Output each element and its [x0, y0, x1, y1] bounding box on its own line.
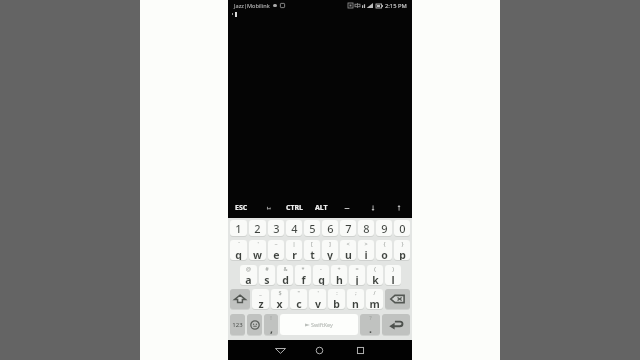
button[interactable]: /	[366, 289, 383, 309]
button[interactable]: 4	[286, 220, 302, 236]
button[interactable]: 6	[322, 220, 338, 236]
staticText: 6	[327, 221, 334, 236]
staticText: ;	[355, 289, 357, 296]
staticText: 2:15 PM	[385, 2, 407, 10]
button[interactable]: }	[394, 240, 410, 260]
button[interactable]: 3	[268, 220, 284, 236]
staticText: p	[399, 248, 406, 260]
button[interactable]: 2	[249, 220, 266, 236]
staticText: n	[352, 297, 359, 309]
button[interactable]: [	[304, 240, 320, 260]
staticText: 0	[399, 221, 406, 236]
button[interactable]: |	[286, 240, 302, 260]
staticText: 9	[381, 221, 388, 236]
button[interactable]: ALT	[308, 198, 334, 218]
button[interactable]: 5	[304, 220, 320, 236]
button[interactable]: $	[271, 289, 288, 309]
staticText: ESC	[235, 203, 248, 213]
staticText: .	[369, 322, 372, 335]
staticText: t	[310, 248, 315, 260]
staticText: k	[372, 273, 379, 285]
staticText: `	[238, 240, 240, 247]
button[interactable]: >	[358, 240, 374, 260]
button[interactable]: Recent apps	[349, 340, 371, 360]
button[interactable]: ]	[322, 240, 338, 260]
staticText: ]	[329, 240, 331, 247]
staticText: a	[245, 273, 252, 285]
button[interactable]: Home	[308, 340, 330, 360]
button[interactable]: Arrow up	[386, 198, 412, 218]
button[interactable]: Enter	[382, 314, 410, 335]
button[interactable]: Shift	[230, 289, 250, 309]
staticText: l	[391, 273, 395, 285]
staticText: (	[374, 265, 376, 272]
button[interactable]: '	[249, 240, 266, 260]
button[interactable]: _	[252, 289, 269, 309]
staticText: f	[301, 273, 306, 285]
staticText: Jazz|Mobilink	[234, 2, 270, 10]
button[interactable]: #	[259, 265, 275, 285]
staticText: |	[292, 240, 296, 247]
staticText: z	[258, 297, 264, 309]
button[interactable]: Backspace	[385, 289, 410, 309]
button[interactable]: "	[290, 289, 307, 309]
button[interactable]: )	[385, 265, 401, 285]
staticText: '	[257, 240, 259, 247]
button[interactable]: SwiftKey	[280, 314, 358, 335]
staticText: u	[345, 248, 352, 260]
button[interactable]: ;	[347, 289, 364, 309]
button[interactable]: ESC	[228, 198, 255, 218]
staticText: {	[383, 240, 386, 247]
button[interactable]: 7	[340, 220, 356, 236]
staticText: c	[296, 297, 302, 309]
button[interactable]: `	[230, 240, 247, 260]
button[interactable]: Arrow down	[360, 198, 386, 218]
staticText: -	[320, 265, 322, 272]
staticText: !	[270, 314, 272, 321]
staticText: s	[264, 273, 270, 285]
staticText: 7	[345, 221, 352, 236]
button[interactable]: -	[313, 265, 329, 285]
button[interactable]: 0	[394, 220, 410, 236]
button[interactable]: +	[331, 265, 347, 285]
button[interactable]: Back	[269, 340, 291, 360]
button[interactable]: 123	[230, 314, 245, 335]
staticText: g	[318, 273, 325, 285]
staticText: m	[369, 297, 380, 309]
button[interactable]: Tab	[255, 198, 282, 218]
staticText: /	[373, 289, 376, 296]
button[interactable]: @	[240, 265, 257, 285]
staticText: ~	[274, 240, 278, 247]
staticText: r	[292, 248, 297, 260]
staticText: =	[355, 265, 359, 272]
button[interactable]: (	[367, 265, 383, 285]
button[interactable]: Minus	[334, 198, 360, 218]
button[interactable]: &	[277, 265, 293, 285]
staticText: j	[355, 273, 359, 285]
button[interactable]: =	[349, 265, 365, 285]
button[interactable]: ~	[268, 240, 284, 260]
button[interactable]: 1	[230, 220, 247, 236]
staticText: CTRL	[286, 203, 304, 213]
button[interactable]: {	[376, 240, 392, 260]
staticText: 3	[273, 221, 280, 236]
button[interactable]: !	[264, 314, 278, 335]
staticText: @	[246, 265, 251, 272]
staticText: *	[301, 265, 305, 272]
button[interactable]: ?	[360, 314, 380, 335]
staticText: 4	[291, 221, 298, 236]
button[interactable]: <	[340, 240, 356, 260]
button[interactable]: CTRL	[282, 198, 308, 218]
staticText: [	[311, 240, 313, 247]
button[interactable]: Emoji	[247, 314, 262, 335]
staticText: }	[401, 240, 404, 247]
staticText: 8	[363, 221, 370, 236]
staticText: _	[259, 289, 262, 296]
button[interactable]: *	[295, 265, 311, 285]
button[interactable]: :	[328, 289, 345, 309]
button[interactable]: 9	[376, 220, 392, 236]
staticText: "	[297, 289, 300, 296]
button[interactable]: '	[309, 289, 326, 309]
staticText: '	[317, 289, 319, 296]
button[interactable]: 8	[358, 220, 374, 236]
